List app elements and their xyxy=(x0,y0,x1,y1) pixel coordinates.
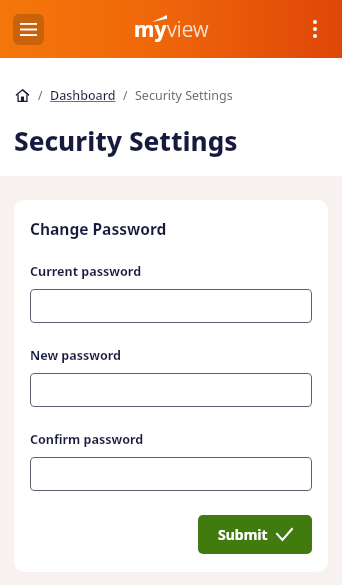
button[interactable]: More options xyxy=(300,14,330,44)
staticText: Security Settings xyxy=(135,87,233,104)
button[interactable]: Dashboard xyxy=(50,87,116,104)
button[interactable]: Confirm password xyxy=(30,457,312,491)
staticText: / xyxy=(123,87,128,103)
staticText: view xyxy=(167,15,209,44)
staticText: / xyxy=(38,87,43,103)
button[interactable]: Submit xyxy=(198,515,312,554)
staticText: my xyxy=(134,15,167,44)
button[interactable]: Home xyxy=(13,86,31,104)
staticText: Current password xyxy=(30,263,142,280)
staticText: Submit xyxy=(218,525,268,544)
staticText: Confirm password xyxy=(30,431,144,448)
staticText: Dashboard xyxy=(50,87,116,104)
button[interactable]: Open navigation menu xyxy=(13,14,44,45)
staticText: Change Password xyxy=(30,218,167,239)
button[interactable]: Current password xyxy=(30,289,312,323)
staticText: Security Settings xyxy=(14,123,238,158)
staticText: New password xyxy=(30,347,122,364)
button[interactable]: New password xyxy=(30,373,312,407)
